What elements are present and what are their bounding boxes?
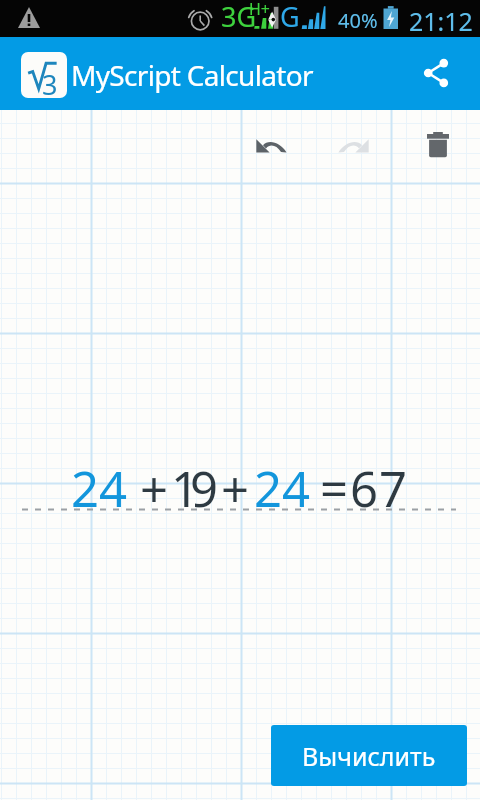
staticText: + [221, 455, 250, 522]
staticText: 1 [171, 455, 200, 522]
button[interactable]: Clear [412, 119, 464, 171]
staticText: MyScript Calculator [71, 56, 313, 94]
staticText: 3G [221, 0, 257, 35]
staticText: G [280, 0, 300, 35]
staticText: + [140, 455, 169, 522]
staticText: 21:12 [409, 4, 473, 38]
staticText: 4 [99, 455, 128, 522]
staticText: Вычислить [302, 739, 436, 773]
button[interactable]: Вычислить [271, 725, 467, 786]
staticText: 9 [190, 455, 219, 522]
staticText: 2 [71, 455, 100, 522]
button[interactable]: Undo [245, 120, 297, 172]
staticText: 40% [338, 7, 378, 34]
button[interactable]: App icon [21, 52, 67, 98]
staticText: 4 [282, 455, 311, 522]
staticText: = [320, 455, 349, 522]
staticText: H+ [249, 0, 271, 20]
staticText: 3 [42, 66, 58, 98]
staticText: 7 [379, 455, 408, 522]
staticText: 6 [350, 455, 379, 522]
button[interactable]: Redo [327, 120, 379, 172]
staticText: 2 [254, 455, 283, 522]
button[interactable]: Share [408, 45, 464, 101]
